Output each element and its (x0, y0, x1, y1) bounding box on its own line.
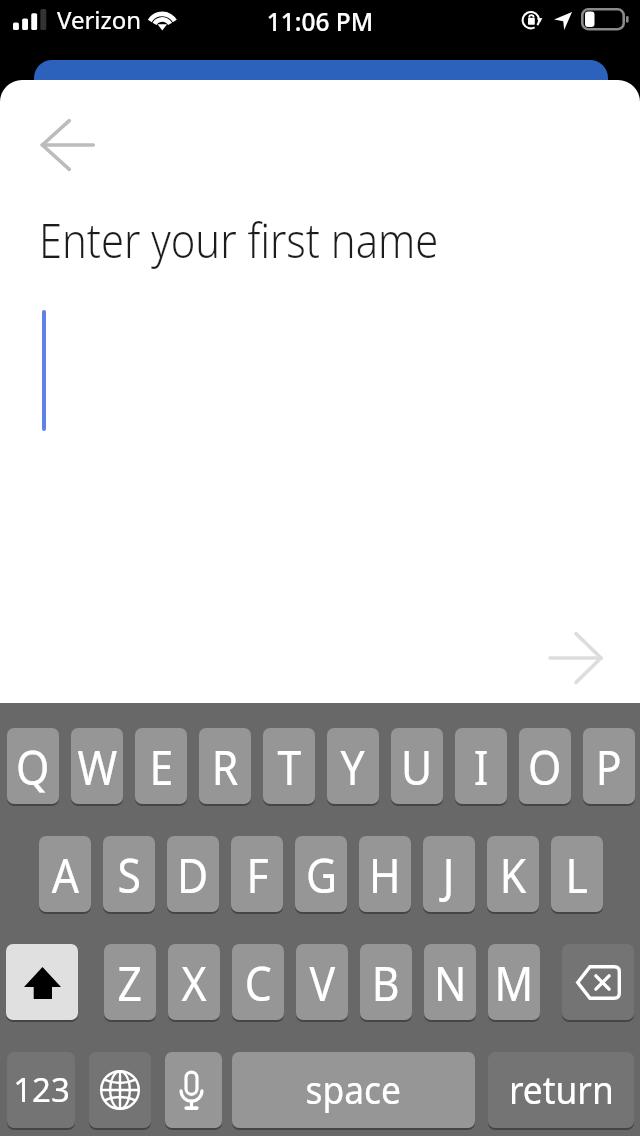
button[interactable]: U (391, 728, 443, 804)
staticText: F (246, 842, 269, 907)
staticText: C (245, 950, 272, 1015)
button[interactable]: Backspace (562, 944, 634, 1020)
button[interactable]: Q (7, 728, 59, 804)
button[interactable]: C (232, 944, 284, 1020)
button[interactable]: S (103, 836, 155, 912)
button[interactable]: M (488, 944, 540, 1020)
button[interactable]: P (583, 728, 635, 804)
button[interactable]: H (359, 836, 411, 912)
button[interactable]: A (39, 836, 91, 912)
button[interactable]: K (487, 836, 539, 912)
button[interactable]: V (296, 944, 348, 1020)
button[interactable]: G (295, 836, 347, 912)
staticText: O (528, 734, 562, 799)
staticText: P (596, 734, 622, 799)
staticText: H (369, 842, 401, 907)
button[interactable]: N (424, 944, 476, 1020)
staticText: 11:06 PM (19, 3, 621, 38)
button[interactable]: Shift (6, 944, 78, 1020)
staticText: B (372, 950, 400, 1015)
staticText: Enter your first name (39, 207, 438, 272)
button[interactable]: T (263, 728, 315, 804)
staticText: Y (340, 734, 365, 799)
button[interactable]: space (232, 1052, 475, 1128)
staticText: K (500, 842, 526, 907)
staticText: return (509, 1063, 614, 1115)
button[interactable]: return (488, 1052, 634, 1128)
button[interactable]: Next (526, 634, 622, 703)
button[interactable]: I (455, 728, 507, 804)
button[interactable]: J (423, 836, 475, 912)
button[interactable]: Back (18, 121, 114, 201)
staticText: N (434, 950, 467, 1015)
staticText: S (117, 842, 141, 907)
staticText: D (177, 842, 209, 907)
staticText: U (401, 734, 433, 799)
button[interactable]: Dictation (165, 1052, 222, 1128)
staticText: space (306, 1063, 401, 1115)
staticText: X (182, 950, 207, 1015)
staticText: I (474, 734, 489, 799)
staticText: Verizon (57, 3, 142, 36)
button[interactable]: B (360, 944, 412, 1020)
button[interactable]: 123 (7, 1052, 75, 1128)
staticText: 123 (13, 1068, 70, 1112)
staticText: A (52, 842, 79, 907)
staticText: Q (16, 734, 50, 799)
button[interactable]: Y (327, 728, 379, 804)
button[interactable]: Z (104, 944, 156, 1020)
button[interactable]: D (167, 836, 219, 912)
button[interactable]: W (71, 728, 123, 804)
button[interactable]: E (135, 728, 187, 804)
staticText: V (310, 950, 335, 1015)
staticText: M (494, 950, 534, 1015)
button[interactable]: O (519, 728, 571, 804)
staticText: J (443, 842, 455, 907)
staticText: Z (117, 950, 142, 1015)
staticText: T (277, 734, 301, 799)
staticText: W (77, 734, 118, 799)
staticText: G (306, 842, 337, 907)
button[interactable]: Next keyboard (89, 1052, 151, 1128)
staticText: E (149, 734, 173, 799)
button[interactable]: F (231, 836, 283, 912)
button[interactable]: X (168, 944, 220, 1020)
button[interactable]: L (551, 836, 603, 912)
button[interactable]: R (199, 728, 251, 804)
staticText: R (212, 734, 238, 799)
staticText: L (565, 842, 588, 907)
